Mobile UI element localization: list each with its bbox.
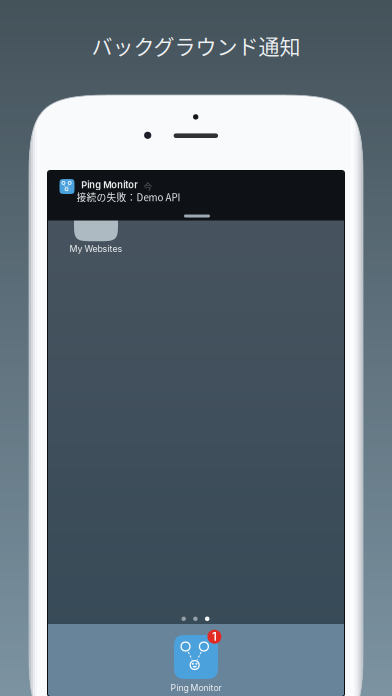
button[interactable]: Ping Monitor <box>166 635 226 695</box>
staticText: My Websites <box>69 243 122 254</box>
staticText: バックグラウンド通知 <box>91 30 300 61</box>
staticText: Ping Monitor <box>81 179 138 190</box>
staticText: Ping Monitor <box>170 682 221 693</box>
staticText: 1 <box>212 630 217 643</box>
button[interactable]: Ping Monitor <box>48 171 344 220</box>
staticText: 今 <box>143 180 152 193</box>
button[interactable]: My Websites <box>56 197 136 257</box>
staticText: 接続の失敗：Demo API <box>76 190 180 204</box>
